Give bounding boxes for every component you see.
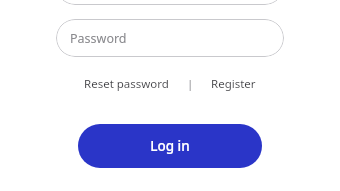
staticText: Password <box>70 30 127 47</box>
button[interactable]: Log in <box>78 124 262 168</box>
staticText: Log in <box>150 137 190 155</box>
staticText: Register <box>211 76 256 92</box>
button[interactable]: Reset password <box>82 75 171 92</box>
staticText: Reset password <box>84 76 169 92</box>
button[interactable]: Register <box>209 75 258 92</box>
button[interactable] <box>56 0 284 5</box>
staticText: | <box>187 76 194 92</box>
button[interactable]: Password <box>56 19 284 57</box>
